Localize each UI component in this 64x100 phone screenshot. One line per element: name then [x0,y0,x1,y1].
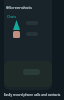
button[interactable]: Screenshots [6,5,32,10]
button[interactable] [26,32,38,36]
button[interactable] [23,69,40,75]
button[interactable] [26,21,38,25]
staticText: Screenshots [9,5,32,10]
staticText: Chats [7,14,17,19]
staticText: Easily record phone calls and contacts [0,93,64,97]
